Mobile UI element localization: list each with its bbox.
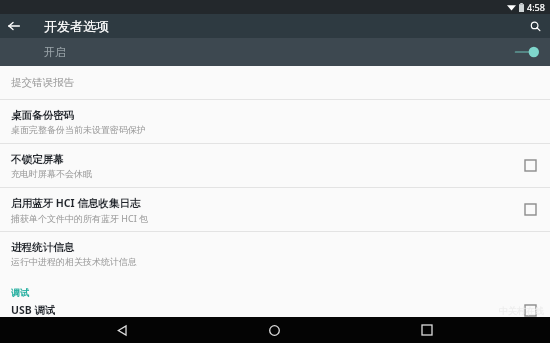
staticText: 开启 — [44, 45, 66, 59]
staticText: 桌面备份密码 — [11, 109, 74, 122]
staticText: 4:58 — [527, 1, 545, 13]
button[interactable]: USB 调试 — [0, 303, 550, 317]
button[interactable]: 桌面备份密码 — [0, 100, 550, 143]
staticText: USB 调试 — [11, 303, 56, 317]
staticText: 不锁定屏幕 — [11, 153, 64, 166]
staticText: 进程统计信息 — [11, 241, 74, 254]
button[interactable]: Home — [244, 317, 304, 343]
staticText: 提交错误报告 — [11, 76, 74, 89]
button[interactable]: 不锁定屏幕 — [0, 144, 550, 187]
button[interactable]: Search — [520, 14, 550, 38]
staticText: 捕获单个文件中的所有蓝牙 HCI 包 — [11, 212, 149, 224]
staticText: 开发者选项 — [44, 18, 109, 34]
staticText: 充电时屏幕不会休眠 — [11, 168, 92, 179]
staticText: 桌面完整备份当前未设置密码保护 — [11, 124, 146, 135]
staticText: 中关村在线 — [499, 305, 544, 316]
button[interactable]: Recent apps — [397, 317, 457, 343]
button[interactable]: 进程统计信息 — [0, 232, 550, 275]
staticText: 启用蓝牙 HCI 信息收集日志 — [11, 196, 141, 210]
button[interactable]: 提交错误报告 — [0, 66, 550, 99]
button[interactable]: Back — [0, 14, 28, 38]
button[interactable]: 启用蓝牙 HCI 信息收集日志 — [0, 188, 550, 231]
staticText: 调试 — [11, 287, 29, 298]
button[interactable]: 开启 — [0, 38, 550, 66]
staticText: 运行中进程的相关技术统计信息 — [11, 256, 137, 267]
button[interactable]: Back — [92, 317, 152, 343]
